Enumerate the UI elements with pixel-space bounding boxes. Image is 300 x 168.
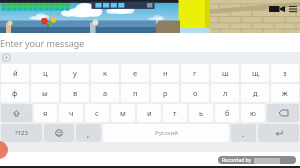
button[interactable]: п <box>121 84 149 102</box>
button[interactable]: . <box>231 124 256 142</box>
button[interactable]: я <box>34 104 57 122</box>
staticText: г <box>193 68 197 78</box>
button[interactable]: ц <box>31 64 59 82</box>
staticText: т <box>173 108 177 118</box>
staticText: н <box>163 68 168 78</box>
staticText: б <box>225 108 230 118</box>
button[interactable]: г <box>181 64 209 82</box>
staticText: ш <box>222 68 229 78</box>
button[interactable]: у <box>61 64 89 82</box>
staticText: ц <box>43 68 48 78</box>
staticText: о <box>193 88 198 98</box>
staticText: Русский <box>155 129 178 137</box>
button[interactable]: Русский <box>103 124 229 142</box>
staticText: ь <box>199 108 204 118</box>
button[interactable]: Menu <box>288 4 298 14</box>
staticText: з <box>283 68 287 78</box>
staticText: . <box>242 128 245 139</box>
staticText: й <box>13 68 18 78</box>
staticText: а <box>103 88 108 98</box>
button[interactable]: ?123 <box>1 124 42 142</box>
button[interactable]: о <box>181 84 209 102</box>
staticText: ы <box>42 88 48 98</box>
staticText: я <box>43 108 48 118</box>
button[interactable]: в <box>61 84 89 102</box>
button[interactable]: ф <box>1 84 29 102</box>
staticText: Enter your message <box>0 37 85 49</box>
staticText: е <box>133 68 138 78</box>
button[interactable]: и <box>137 104 161 122</box>
staticText: и <box>147 108 152 118</box>
staticText: р <box>163 88 168 98</box>
button[interactable]: а <box>91 84 119 102</box>
staticText: л <box>223 88 228 98</box>
staticText: п <box>133 88 138 98</box>
button[interactable]: , <box>76 124 101 142</box>
button[interactable]: с <box>85 104 109 122</box>
button[interactable]: м <box>111 104 135 122</box>
staticText: у <box>73 68 77 78</box>
button[interactable]: ы <box>31 84 59 102</box>
button[interactable]: ю <box>241 104 265 122</box>
staticText: ю <box>250 108 256 118</box>
staticText: д <box>253 88 258 98</box>
staticText: Recorded by <box>222 157 252 164</box>
button[interactable]: ч <box>59 104 83 122</box>
button[interactable]: щ <box>241 64 269 82</box>
button[interactable]: Emoji <box>44 124 74 142</box>
button[interactable]: н <box>151 64 179 82</box>
button[interactable]: Recorded by <box>218 156 296 164</box>
staticText: ?123 <box>15 129 28 137</box>
staticText: ж <box>282 88 288 98</box>
button[interactable]: ш <box>211 64 239 82</box>
button[interactable]: Backspace <box>267 104 299 122</box>
staticText: в <box>73 88 78 98</box>
staticText: ф <box>12 88 18 98</box>
button[interactable]: р <box>151 84 179 102</box>
staticText: ч <box>69 108 74 118</box>
button[interactable]: е <box>121 64 149 82</box>
staticText: к <box>103 68 107 78</box>
button[interactable]: Enter <box>258 124 299 142</box>
staticText: м <box>120 108 126 118</box>
button[interactable]: ж <box>271 84 299 102</box>
button[interactable]: л <box>211 84 239 102</box>
staticText: , <box>87 128 90 139</box>
button[interactable]: Enter your message <box>0 33 300 52</box>
button[interactable]: й <box>1 64 29 82</box>
button[interactable]: Shift <box>1 104 32 122</box>
staticText: с <box>95 108 99 118</box>
button[interactable]: Camera <box>269 4 285 14</box>
button[interactable]: к <box>91 64 119 82</box>
button[interactable]: т <box>163 104 187 122</box>
staticText: щ <box>252 68 259 78</box>
button[interactable]: з <box>271 64 299 82</box>
button[interactable]: б <box>215 104 239 122</box>
button[interactable]: ь <box>189 104 213 122</box>
button[interactable]: Keyboard settings <box>3 54 10 61</box>
button[interactable]: д <box>241 84 269 102</box>
